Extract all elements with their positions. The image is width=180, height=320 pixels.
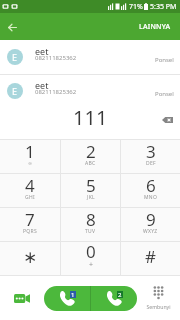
staticText: +	[89, 260, 94, 270]
staticText: 082111825362	[35, 54, 77, 62]
staticText: eet	[35, 45, 49, 57]
button[interactable]: 4	[0, 174, 60, 207]
button[interactable]: Back	[0, 15, 24, 39]
staticText: 8	[86, 208, 96, 231]
staticText: 6	[146, 174, 156, 197]
staticText: ∞	[28, 160, 33, 166]
staticText: #	[145, 245, 156, 268]
staticText: 0	[86, 240, 96, 263]
staticText: 4	[25, 174, 35, 197]
staticText: ABC	[85, 160, 96, 167]
staticText: GHI	[25, 194, 35, 201]
staticText: 9	[146, 208, 156, 231]
staticText: WXYZ	[143, 228, 158, 235]
staticText: E	[12, 85, 18, 97]
staticText: Sembunyi	[146, 303, 171, 310]
button[interactable]: 8	[61, 208, 120, 241]
staticText: 7	[25, 208, 35, 231]
staticText: eet	[35, 79, 49, 91]
button[interactable]: 0	[61, 242, 120, 275]
button[interactable]: 6	[121, 174, 180, 207]
staticText: 1	[71, 291, 75, 298]
button[interactable]: Call with SIM 1	[44, 286, 90, 311]
button[interactable]: Video call	[10, 286, 34, 310]
button[interactable]: E	[0, 75, 180, 101]
button[interactable]: 3	[121, 140, 180, 173]
staticText: PQRS	[23, 228, 37, 235]
staticText: DEF	[146, 160, 156, 167]
staticText: TUV	[85, 228, 96, 235]
staticText: 5:35 PM	[150, 2, 177, 12]
staticText: 082111825362	[35, 88, 77, 96]
button[interactable]: 9	[121, 208, 180, 241]
button[interactable]: Sembunyi	[136, 286, 180, 310]
button[interactable]: 7	[0, 208, 60, 241]
staticText: 71%	[129, 2, 143, 12]
staticText: MNO	[144, 194, 158, 201]
staticText: 111	[73, 104, 108, 131]
staticText: LAINNYA	[139, 22, 171, 32]
button[interactable]: ∗	[0, 242, 60, 275]
staticText: Ponsel	[155, 56, 174, 64]
button[interactable]: 5	[61, 174, 120, 207]
button[interactable]: #	[121, 242, 180, 275]
staticText: Ponsel	[155, 90, 174, 98]
staticText: 5	[86, 174, 96, 197]
staticText: 1	[25, 140, 35, 163]
staticText: JKL	[87, 194, 95, 201]
staticText: ∗	[23, 247, 38, 267]
button[interactable]: 1	[0, 140, 60, 173]
button[interactable]: Call with SIM 2	[91, 286, 137, 311]
staticText: 3	[146, 140, 156, 163]
button[interactable]: LAINNYA	[129, 13, 180, 40]
staticText: 2	[118, 291, 122, 298]
staticText: E	[12, 51, 18, 63]
button[interactable]: E	[0, 40, 180, 74]
button[interactable]: 2	[61, 140, 120, 173]
staticText: 2	[86, 140, 96, 163]
button[interactable]: Backspace	[153, 106, 180, 134]
